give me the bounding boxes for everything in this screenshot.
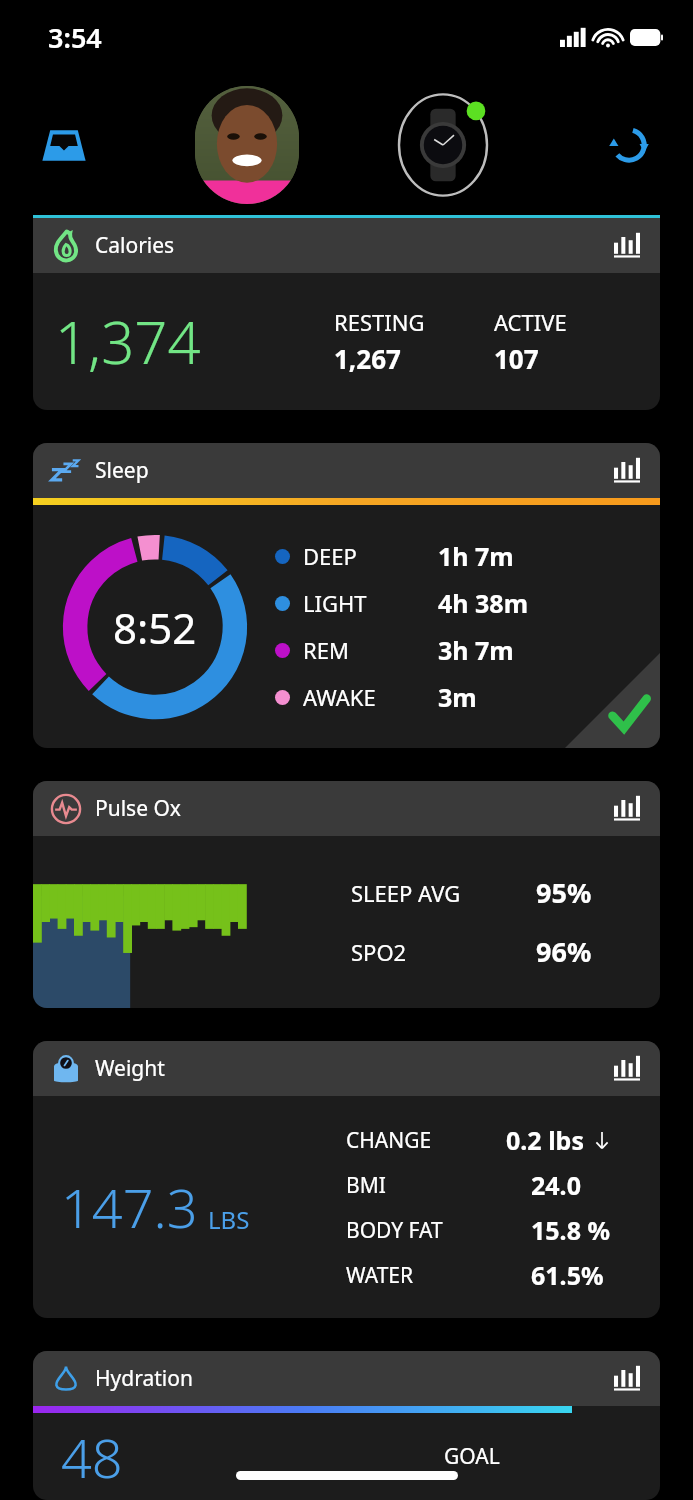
staticText: 15.8 % xyxy=(531,1213,610,1247)
button[interactable]: Hydration xyxy=(33,1351,660,1500)
staticText: 61.5% xyxy=(531,1258,604,1292)
staticText: DEEP xyxy=(303,541,357,571)
button[interactable]: Sleep chart xyxy=(610,454,644,488)
staticText: 0.2 lbs xyxy=(506,1123,584,1157)
staticText: 48 xyxy=(61,1420,123,1494)
button[interactable]: Watch device xyxy=(388,90,498,200)
staticText: 95% xyxy=(536,874,592,911)
staticText: 3m xyxy=(438,680,477,714)
staticText: SLEEP AVG xyxy=(351,878,461,908)
button[interactable]: Hydration xyxy=(33,1351,660,1406)
staticText: BMI xyxy=(346,1171,386,1200)
button[interactable]: Inbox xyxy=(22,103,106,187)
staticText: 96% xyxy=(536,933,592,970)
button[interactable]: Weight xyxy=(33,1041,660,1096)
staticText: LBS xyxy=(208,1203,250,1236)
staticText: SPO2 xyxy=(351,937,407,967)
staticText: Calories xyxy=(95,231,175,260)
staticText: 24.0 xyxy=(531,1168,581,1202)
staticText: ACTIVE xyxy=(494,307,567,337)
staticText: RESTING xyxy=(334,307,425,337)
staticText: 3:54 xyxy=(48,19,102,56)
staticText: 1,374 xyxy=(55,302,201,381)
staticText: AWAKE xyxy=(303,682,376,712)
button[interactable]: Pulse Ox xyxy=(33,781,660,1008)
staticText: GOAL xyxy=(444,1442,500,1471)
button[interactable]: Pulse Ox chart xyxy=(610,792,644,826)
staticText: 1h 7m xyxy=(438,539,514,573)
button[interactable]: Weight chart xyxy=(610,1052,644,1086)
staticText: 4h 38m xyxy=(438,586,529,620)
button[interactable]: Weight xyxy=(33,1041,660,1318)
button[interactable]: Calories xyxy=(33,218,660,410)
staticText: 8:52 xyxy=(113,599,197,656)
button[interactable]: Pulse Ox xyxy=(33,781,660,836)
staticText: CHANGE xyxy=(346,1126,432,1155)
staticText: Weight xyxy=(95,1054,165,1083)
staticText: Hydration xyxy=(95,1364,193,1393)
staticText: 1,267 xyxy=(334,341,401,376)
staticText: Sleep xyxy=(95,456,149,485)
staticText: REM xyxy=(303,635,349,665)
staticText: WATER xyxy=(346,1261,414,1290)
staticText: 147.3 xyxy=(61,1170,198,1244)
button[interactable]: Sleep xyxy=(33,443,660,748)
staticText: 107 xyxy=(494,341,539,376)
button[interactable]: Calories xyxy=(33,218,660,273)
staticText: Pulse Ox xyxy=(95,794,181,823)
button[interactable]: Calories chart xyxy=(610,229,644,263)
button[interactable]: Sleep xyxy=(33,443,660,498)
staticText: BODY FAT xyxy=(346,1216,443,1245)
button[interactable]: Profile xyxy=(195,86,299,204)
staticText: 3h 7m xyxy=(438,633,514,667)
button[interactable]: Sync xyxy=(587,103,671,187)
button[interactable]: Hydration chart xyxy=(610,1362,644,1396)
staticText: LIGHT xyxy=(303,588,367,618)
